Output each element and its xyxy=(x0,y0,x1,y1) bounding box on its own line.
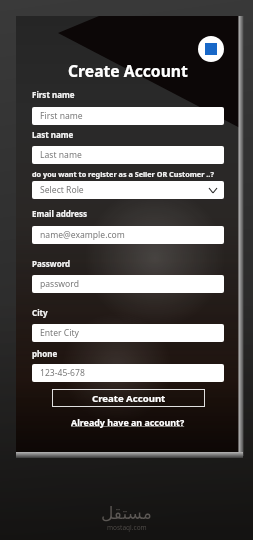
button[interactable]: name@example.com xyxy=(32,226,224,244)
staticText: mostaql.com xyxy=(107,523,147,532)
staticText: Enter City xyxy=(40,327,79,339)
button[interactable]: Already have an account? xyxy=(71,416,185,428)
staticText: First name xyxy=(32,89,75,100)
button[interactable]: First name xyxy=(32,107,224,125)
staticText: City xyxy=(32,307,48,318)
staticText: name@example.com xyxy=(40,229,125,241)
staticText: Create Account xyxy=(92,392,166,405)
button[interactable]: Last name xyxy=(32,146,224,164)
button[interactable]: App logo xyxy=(198,36,224,62)
staticText: مستقل xyxy=(101,503,152,523)
staticText: Password xyxy=(32,258,71,269)
button[interactable]: password xyxy=(32,275,224,293)
button[interactable]: Create Account xyxy=(52,389,205,407)
staticText: Create Account xyxy=(68,60,188,81)
staticText: phone xyxy=(32,348,58,359)
staticText: Email address xyxy=(32,208,88,219)
staticText: password xyxy=(40,278,79,290)
staticText: Select Role xyxy=(40,184,84,196)
button[interactable]: Enter City xyxy=(32,324,224,342)
staticText: 123-45-678 xyxy=(40,367,85,379)
staticText: do you want to register as a Seller OR C… xyxy=(32,169,214,179)
staticText: Last name xyxy=(32,129,74,140)
button[interactable]: Select Role xyxy=(32,181,224,199)
button[interactable]: 123-45-678 xyxy=(32,364,224,382)
staticText: Last name xyxy=(40,149,82,161)
staticText: First name xyxy=(40,110,83,122)
